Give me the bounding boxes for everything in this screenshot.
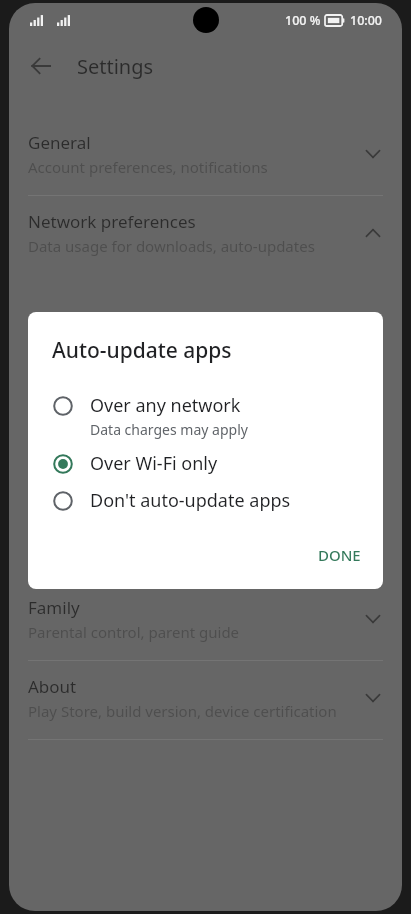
button[interactable]: Network preferences: [9, 196, 402, 274]
staticText: Over Wi-Fi only: [90, 451, 218, 476]
button[interactable]: DONE: [308, 537, 371, 573]
button[interactable]: Don't auto-update apps: [28, 482, 383, 519]
staticText: Parental control, parent guide: [28, 622, 240, 642]
staticText: Data usage for downloads, auto-updates: [28, 236, 315, 256]
staticText: Auto-update apps: [52, 336, 232, 365]
staticText: Data charges may apply: [90, 420, 248, 439]
staticText: General: [28, 131, 91, 154]
staticText: Network preferences: [28, 210, 196, 233]
staticText: Don't auto-update apps: [90, 488, 291, 513]
button[interactable]: Family: [9, 582, 402, 660]
staticText: Family: [28, 596, 80, 619]
staticText: 10:00: [350, 12, 383, 29]
button[interactable]: General: [9, 117, 402, 195]
staticText: About: [28, 675, 77, 698]
staticText: Play Store, build version, device certif…: [28, 701, 337, 721]
button[interactable]: Back: [17, 42, 65, 90]
staticText: DONE: [318, 545, 361, 565]
staticText: Settings: [77, 53, 154, 80]
staticText: Over any network: [90, 393, 241, 418]
button[interactable]: Over Wi-Fi only: [28, 445, 383, 482]
button[interactable]: Over any network: [28, 387, 383, 445]
button[interactable]: About: [9, 661, 402, 739]
staticText: Account preferences, notifications: [28, 157, 268, 177]
staticText: 100 %: [285, 12, 321, 29]
